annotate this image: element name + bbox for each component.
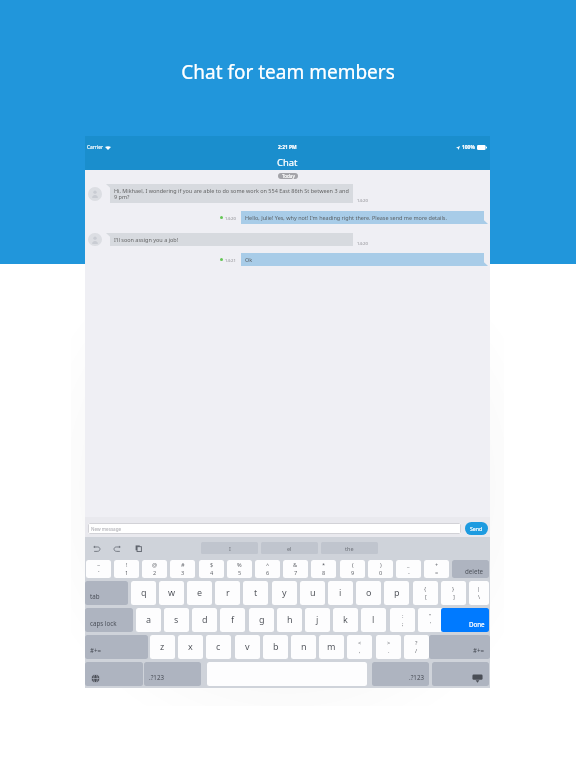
button[interactable]: e bbox=[187, 581, 212, 605]
staticText: u bbox=[310, 586, 316, 598]
button[interactable]: d bbox=[192, 608, 217, 632]
button[interactable]: Done bbox=[441, 608, 489, 632]
button[interactable]: delete bbox=[452, 560, 489, 578]
staticText: g bbox=[259, 613, 265, 625]
button[interactable]: | bbox=[469, 581, 489, 605]
button[interactable]: ^ bbox=[255, 560, 280, 578]
button[interactable]: ! bbox=[114, 560, 139, 578]
button[interactable]: I bbox=[201, 542, 258, 554]
button[interactable]: > bbox=[376, 635, 401, 659]
staticText: / bbox=[415, 647, 418, 655]
button[interactable]: j bbox=[305, 608, 330, 632]
button[interactable]: Send bbox=[465, 522, 488, 535]
staticText: s bbox=[174, 613, 179, 625]
staticText: 9 bbox=[351, 569, 355, 577]
button[interactable]: ) bbox=[368, 560, 393, 578]
button[interactable]: % bbox=[227, 560, 252, 578]
button[interactable]: c bbox=[206, 635, 231, 659]
staticText: Chat for team members bbox=[181, 59, 395, 85]
staticText: Carrier bbox=[87, 144, 103, 151]
button[interactable]: t bbox=[243, 581, 268, 605]
button[interactable]: #+= bbox=[85, 635, 148, 659]
button[interactable]: the bbox=[321, 542, 378, 554]
button[interactable]: Paste bbox=[131, 541, 145, 555]
button[interactable]: o bbox=[356, 581, 381, 605]
staticText: e bbox=[197, 586, 203, 598]
staticText: j bbox=[316, 613, 319, 625]
staticText: ~ bbox=[97, 561, 101, 569]
button[interactable]: x bbox=[178, 635, 203, 659]
button[interactable]: Hide keyboard bbox=[432, 662, 489, 686]
button[interactable]: Redo bbox=[110, 541, 124, 555]
button[interactable]: ( bbox=[340, 560, 365, 578]
button[interactable]: @ bbox=[142, 560, 167, 578]
staticText: c bbox=[216, 640, 221, 652]
staticText: 3 bbox=[181, 569, 185, 577]
button[interactable]: { bbox=[413, 581, 438, 605]
button[interactable]: n bbox=[291, 635, 316, 659]
button[interactable]: .?123 bbox=[144, 662, 201, 686]
button[interactable]: $ bbox=[199, 560, 224, 578]
button[interactable]: u bbox=[300, 581, 325, 605]
button[interactable]: } bbox=[441, 581, 466, 605]
button[interactable]: : bbox=[390, 608, 415, 632]
staticText: 14:20 bbox=[225, 215, 236, 221]
button[interactable]: el bbox=[261, 542, 318, 554]
button[interactable]: f bbox=[220, 608, 245, 632]
staticText: ) bbox=[380, 561, 382, 569]
staticText: ` bbox=[98, 569, 100, 577]
staticText: = bbox=[435, 569, 439, 577]
staticText: ' bbox=[430, 620, 432, 628]
button[interactable]: k bbox=[333, 608, 358, 632]
button[interactable]: v bbox=[235, 635, 260, 659]
button[interactable]: Undo bbox=[89, 541, 103, 555]
button[interactable]: g bbox=[249, 608, 274, 632]
staticText: : bbox=[402, 612, 404, 620]
staticText: 14:20 bbox=[357, 197, 368, 203]
button[interactable]: Change keyboard language bbox=[85, 662, 143, 686]
staticText: ^ bbox=[266, 561, 270, 569]
button[interactable]: p bbox=[384, 581, 409, 605]
button[interactable]: _ bbox=[396, 560, 421, 578]
button[interactable]: tab bbox=[85, 581, 128, 605]
staticText: v bbox=[245, 640, 250, 652]
button[interactable]: l bbox=[361, 608, 386, 632]
button[interactable]: s bbox=[164, 608, 189, 632]
staticText: @ bbox=[152, 561, 158, 569]
button[interactable]: y bbox=[272, 581, 297, 605]
button[interactable]: + bbox=[424, 560, 449, 578]
button[interactable]: a bbox=[136, 608, 161, 632]
staticText: Done bbox=[469, 620, 485, 628]
button[interactable]: r bbox=[215, 581, 240, 605]
button[interactable]: & bbox=[283, 560, 308, 578]
button[interactable]: m bbox=[319, 635, 344, 659]
button[interactable]: * bbox=[311, 560, 336, 578]
button[interactable]: #+= bbox=[429, 635, 490, 659]
button[interactable]: ~ bbox=[86, 560, 111, 578]
staticText: I'll soon assign you a job! bbox=[114, 236, 179, 243]
button[interactable]: i bbox=[328, 581, 353, 605]
staticText: ( bbox=[352, 561, 354, 569]
button[interactable]: w bbox=[159, 581, 184, 605]
staticText: t bbox=[254, 586, 258, 598]
button[interactable]: .?123 bbox=[372, 662, 429, 686]
button[interactable]: < bbox=[347, 635, 372, 659]
button[interactable]: caps lock bbox=[85, 608, 133, 632]
staticText: 8 bbox=[322, 569, 326, 577]
button[interactable]: " bbox=[418, 608, 443, 632]
staticText: Send bbox=[470, 525, 483, 532]
staticText: ] bbox=[453, 593, 455, 601]
staticText: 0 bbox=[379, 569, 383, 577]
button[interactable]: New message bbox=[88, 523, 461, 534]
button[interactable]: z bbox=[150, 635, 175, 659]
button[interactable]: # bbox=[170, 560, 195, 578]
button[interactable]: b bbox=[263, 635, 288, 659]
staticText: f bbox=[231, 613, 235, 625]
button[interactable]: h bbox=[277, 608, 302, 632]
button[interactable]: q bbox=[131, 581, 156, 605]
staticText: ! bbox=[126, 561, 128, 569]
staticText: Hello, Julie! Yes, why not! I'm heading … bbox=[245, 214, 447, 221]
staticText: $ bbox=[210, 561, 214, 569]
button[interactable]: ? bbox=[404, 635, 429, 659]
